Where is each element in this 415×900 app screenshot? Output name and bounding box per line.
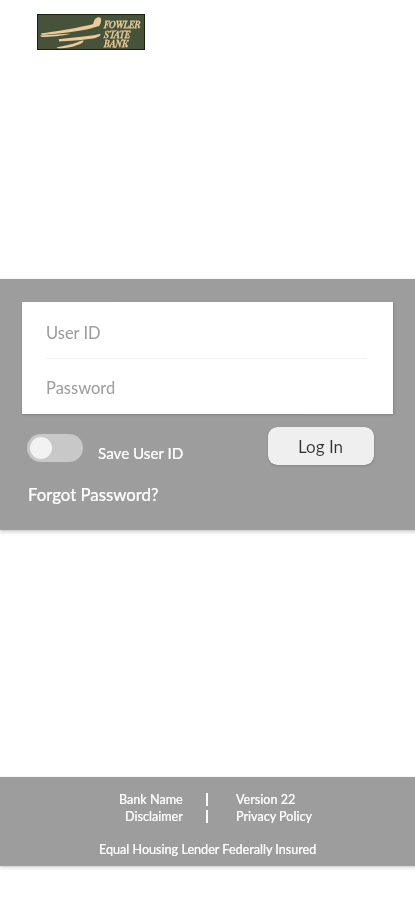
staticText: Privacy Policy	[236, 809, 312, 824]
staticText: BANK	[104, 37, 129, 49]
button[interactable]: Privacy Policy	[236, 809, 321, 824]
button[interactable]: User ID	[22, 302, 393, 358]
other: Save User ID switch, off	[27, 434, 83, 462]
button[interactable]: Forgot Password?	[28, 484, 159, 504]
button[interactable]: Log In	[268, 427, 374, 465]
button[interactable]: Version 22	[236, 792, 321, 807]
staticText: Disclaimer	[125, 809, 183, 824]
staticText: User ID	[46, 323, 101, 343]
staticText: Version 22	[236, 792, 296, 807]
staticText: Equal Housing Lender Federally Insured	[99, 842, 317, 857]
staticText: STATE	[104, 28, 131, 40]
button[interactable]: Bank Name	[107, 792, 183, 807]
button[interactable]: Save User ID switch, off	[27, 434, 184, 462]
staticText: Password	[46, 378, 116, 398]
staticText: Bank Name	[119, 792, 183, 807]
staticText: Save User ID	[98, 444, 184, 462]
button[interactable]: Password	[22, 359, 393, 414]
staticText: FOWLER	[104, 18, 141, 30]
staticText: Log In	[298, 436, 344, 456]
button[interactable]: Disclaimer	[107, 809, 183, 824]
